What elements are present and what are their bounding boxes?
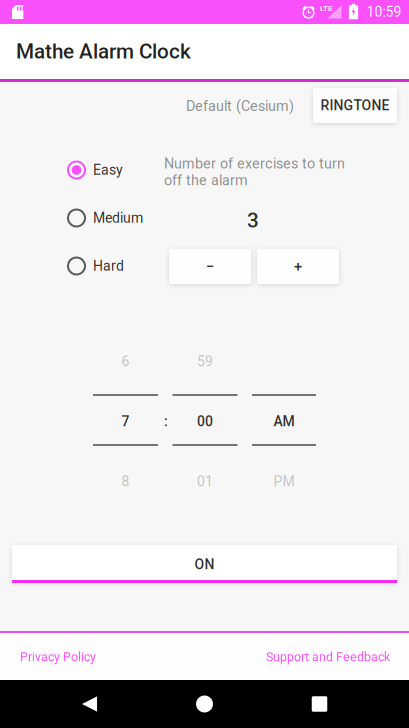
staticText: Privacy Policy xyxy=(20,650,96,664)
staticText: − xyxy=(206,258,214,275)
staticText: Number of exercises to turn off the alar… xyxy=(164,155,345,189)
button[interactable]: + xyxy=(257,249,339,284)
staticText: : xyxy=(164,413,168,430)
staticText: 00 xyxy=(197,413,213,430)
button[interactable]: ON xyxy=(12,545,397,583)
staticText: 01 xyxy=(197,473,213,490)
staticText: AM xyxy=(273,413,294,430)
button[interactable]: Hard xyxy=(67,244,163,288)
staticText: Hard xyxy=(93,258,124,274)
staticText: 59 xyxy=(197,353,213,370)
staticText: PM xyxy=(273,473,294,490)
staticText: Mathe Alarm Clock xyxy=(16,39,191,64)
staticText: Default (Cesium) xyxy=(186,98,294,114)
button[interactable]: Easy xyxy=(67,148,163,192)
button[interactable]: Privacy Policy xyxy=(16,642,100,672)
button[interactable]: Support and Feedback xyxy=(262,642,394,672)
button[interactable]: RINGTONE xyxy=(313,88,397,123)
button[interactable]: Medium xyxy=(67,196,163,240)
button[interactable]: Home xyxy=(196,695,213,712)
staticText: 7 xyxy=(121,413,129,430)
staticText: 6 xyxy=(121,353,129,370)
staticText: + xyxy=(294,258,302,275)
staticText: LTE xyxy=(320,4,333,13)
staticText: Support and Feedback xyxy=(266,650,390,664)
staticText: 3 xyxy=(247,208,259,233)
staticText: RINGTONE xyxy=(320,97,389,114)
staticText: ON xyxy=(194,556,214,573)
staticText: 10:59 xyxy=(366,4,401,20)
button[interactable]: Back xyxy=(82,696,97,712)
button[interactable]: Recent apps xyxy=(312,696,327,712)
staticText: 8 xyxy=(121,473,129,490)
button[interactable]: − xyxy=(169,249,251,284)
staticText: Easy xyxy=(93,162,123,178)
staticText: Medium xyxy=(93,210,143,226)
